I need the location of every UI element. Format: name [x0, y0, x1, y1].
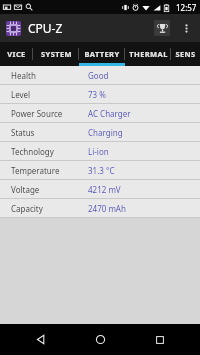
- button[interactable]: SENS: [171, 42, 200, 66]
- staticText: CPU-Z: [28, 20, 63, 36]
- button[interactable]: THERMAL: [125, 42, 171, 66]
- button[interactable]: BATTERY: [79, 42, 125, 66]
- button[interactable]: Level: [0, 85, 200, 103]
- staticText: Good: [88, 70, 109, 81]
- staticText: 12:57: [176, 2, 197, 13]
- staticText: 31.3 °C: [88, 165, 115, 176]
- button[interactable]: Health: [0, 66, 200, 84]
- staticText: Li-ion: [88, 146, 109, 157]
- staticText: SENS: [175, 49, 196, 59]
- staticText: AC Charger: [88, 108, 131, 119]
- staticText: Power Source: [11, 108, 88, 119]
- staticText: Status: [11, 127, 88, 138]
- staticText: VICE: [7, 49, 26, 59]
- button[interactable]: Status: [0, 123, 200, 141]
- staticText: SYSTEM: [41, 49, 72, 59]
- staticText: Technology: [11, 146, 88, 157]
- staticText: BATTERY: [84, 49, 120, 59]
- button[interactable]: Home: [80, 324, 120, 355]
- button[interactable]: VICE: [0, 42, 33, 66]
- staticText: Charging: [88, 127, 123, 138]
- button[interactable]: Voltage: [0, 180, 200, 198]
- staticText: Capacity: [11, 203, 88, 214]
- button[interactable]: Benchmark: [150, 16, 174, 40]
- button[interactable]: Temperature: [0, 161, 200, 179]
- button[interactable]: Capacity: [0, 199, 200, 217]
- button[interactable]: Power Source: [0, 104, 200, 122]
- button[interactable]: Back: [20, 324, 60, 355]
- button[interactable]: SYSTEM: [33, 42, 79, 66]
- staticText: Level: [11, 89, 88, 100]
- staticText: Temperature: [11, 165, 88, 176]
- staticText: 73 %: [88, 89, 106, 100]
- staticText: Voltage: [11, 184, 88, 195]
- button[interactable]: Technology: [0, 142, 200, 160]
- staticText: 2470 mAh: [88, 203, 126, 214]
- staticText: THERMAL: [129, 49, 168, 59]
- staticText: 4212 mV: [88, 184, 121, 195]
- button[interactable]: More options: [174, 16, 198, 40]
- button[interactable]: CPU-Z: [6, 20, 63, 36]
- staticText: Health: [11, 70, 88, 81]
- button[interactable]: Recents: [140, 324, 180, 355]
